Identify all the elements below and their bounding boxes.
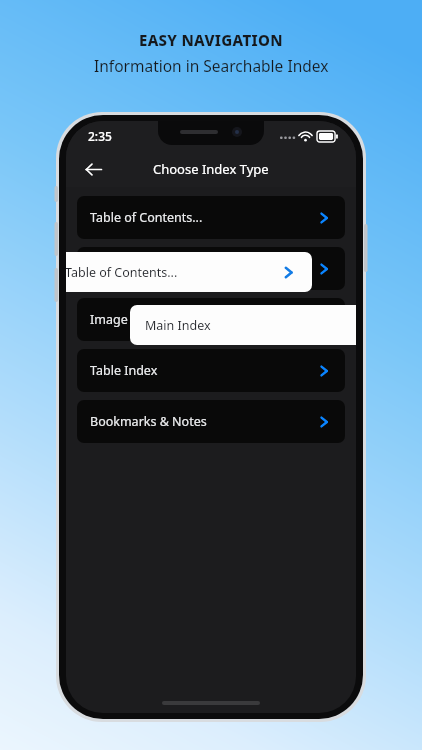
staticText: Table of Contents... — [90, 209, 203, 226]
staticText: Image Index — [90, 311, 164, 328]
button[interactable]: Bookmarks & Notes — [77, 400, 345, 443]
button[interactable]: Table Index — [77, 349, 345, 392]
button[interactable]: Image Index — [77, 298, 345, 341]
button[interactable]: Table of Contents... — [66, 252, 312, 292]
staticText: Table of Contents... — [66, 264, 178, 281]
button[interactable] — [77, 247, 345, 290]
staticText: Table Index — [90, 362, 158, 379]
button[interactable]: Back — [74, 151, 112, 187]
staticText: EASY NAVIGATION — [139, 30, 283, 50]
button[interactable]: Main Index — [130, 305, 356, 345]
staticText: Information in Searchable Index — [94, 55, 329, 76]
staticText: Bookmarks & Notes — [90, 413, 207, 430]
staticText: 2:35 — [88, 128, 112, 144]
button[interactable]: Table of Contents... — [77, 196, 345, 239]
staticText: Choose Index Type — [153, 160, 269, 178]
staticText: Main Index — [145, 317, 211, 334]
